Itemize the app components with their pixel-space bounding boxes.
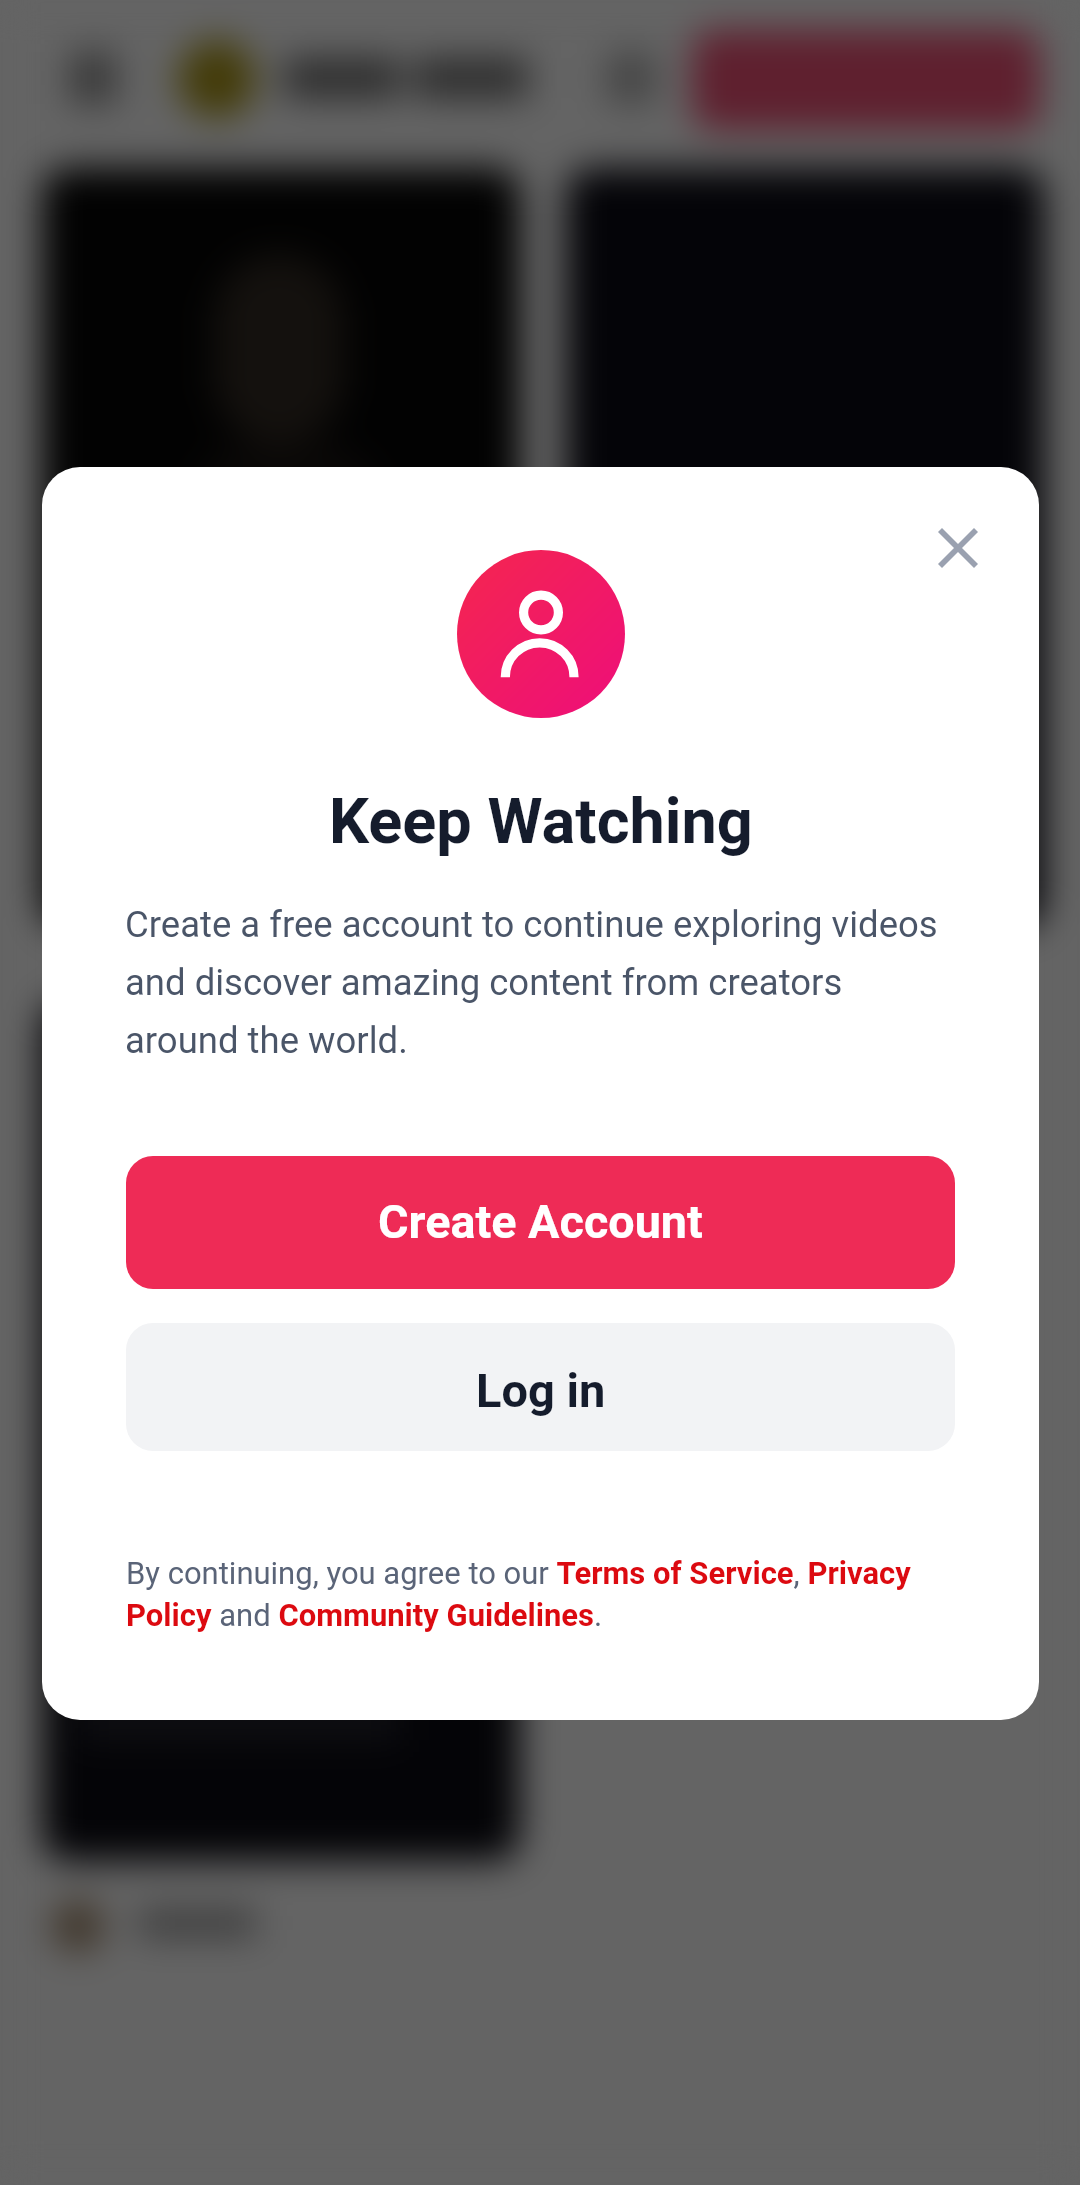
staticText: Create Account bbox=[378, 1195, 703, 1250]
staticText: Log in bbox=[476, 1363, 606, 1418]
button[interactable]: Log in bbox=[126, 1323, 955, 1451]
button[interactable]: Close dialog bbox=[908, 498, 1008, 598]
staticText: Create a free account to continue explor… bbox=[125, 903, 951, 1062]
button[interactable]: Create Account bbox=[126, 1156, 955, 1289]
staticText: Keep Watching bbox=[329, 785, 753, 859]
staticText: By continuing, you agree to our Terms of… bbox=[126, 1555, 946, 1634]
button[interactable]: By continuing, you agree to our Terms of… bbox=[126, 1555, 946, 1634]
